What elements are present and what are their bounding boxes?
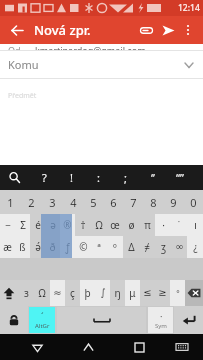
button[interactable]: ∞ bbox=[171, 236, 187, 258]
button[interactable]: 5 bbox=[83, 190, 103, 214]
staticText: ! bbox=[70, 170, 73, 185]
staticText: ə bbox=[50, 218, 56, 232]
button[interactable]: ß bbox=[15, 236, 30, 258]
button[interactable]: ə́ bbox=[30, 236, 45, 258]
staticText: Δ bbox=[128, 240, 135, 254]
button[interactable]: з bbox=[18, 280, 34, 306]
button[interactable]: ı bbox=[187, 214, 203, 236]
button[interactable]: ; bbox=[112, 165, 139, 190]
button[interactable]: Back bbox=[22, 334, 52, 360]
button[interactable]: 1 bbox=[0, 190, 21, 214]
button[interactable]: − bbox=[0, 214, 15, 236]
button[interactable]: º bbox=[107, 236, 123, 258]
button[interactable]: ª bbox=[91, 236, 107, 258]
staticText: ≠ bbox=[144, 240, 150, 254]
button[interactable]: Σ bbox=[15, 214, 30, 236]
staticText: ø bbox=[128, 218, 135, 232]
staticText: ª bbox=[97, 240, 101, 254]
staticText: 8 bbox=[150, 195, 157, 210]
button[interactable]: μ bbox=[125, 280, 140, 306]
button[interactable]: 3 bbox=[42, 190, 63, 214]
staticText: ı bbox=[194, 218, 197, 232]
staticText: 6 bbox=[110, 195, 117, 210]
button[interactable]: ˙ bbox=[171, 214, 187, 236]
staticText: 0 bbox=[190, 195, 197, 210]
button[interactable]: More options bbox=[179, 21, 197, 39]
button[interactable]: † bbox=[75, 214, 91, 236]
button[interactable]: ° bbox=[170, 280, 185, 306]
button[interactable]: ≠ bbox=[139, 236, 155, 258]
button[interactable]: ∫ bbox=[95, 280, 110, 306]
button[interactable]: Enter bbox=[174, 306, 203, 334]
button[interactable]: Space bbox=[57, 307, 146, 333]
staticText: · bbox=[160, 310, 163, 322]
button[interactable]: Shift bbox=[0, 280, 18, 306]
button[interactable]: ≥ bbox=[155, 280, 170, 306]
button[interactable]: þ bbox=[80, 280, 95, 306]
button[interactable]: ç bbox=[65, 280, 80, 306]
button[interactable]: 6 bbox=[103, 190, 123, 214]
button[interactable]: ‘’ bbox=[139, 165, 166, 190]
staticText: ə́ bbox=[35, 240, 41, 254]
staticText: Σ bbox=[20, 218, 26, 232]
button[interactable]: Search bbox=[0, 165, 30, 190]
button[interactable]: Attach bbox=[135, 19, 157, 41]
button[interactable]: ? bbox=[30, 165, 58, 190]
button[interactable]: · bbox=[148, 307, 173, 333]
button[interactable]: ¿ bbox=[187, 236, 203, 258]
button[interactable]: ə bbox=[45, 214, 60, 236]
button[interactable]: Komu bbox=[0, 51, 203, 78]
button[interactable]: ! bbox=[58, 165, 85, 190]
button[interactable]: Δ bbox=[123, 236, 139, 258]
button[interactable]: Ω bbox=[91, 214, 107, 236]
staticText: ŋ bbox=[114, 286, 121, 300]
button[interactable]: ≤ bbox=[140, 280, 155, 306]
button[interactable]: Lock bbox=[0, 306, 28, 334]
staticText: Od bbox=[8, 44, 21, 50]
staticText: † bbox=[80, 218, 86, 232]
button[interactable]: π bbox=[139, 214, 155, 236]
button[interactable]: ŋ bbox=[110, 280, 125, 306]
button[interactable]: 7 bbox=[123, 190, 143, 214]
button[interactable]: Home bbox=[73, 334, 103, 360]
staticText: 1 bbox=[7, 195, 14, 210]
button[interactable]: 8 bbox=[143, 190, 163, 214]
staticText: : bbox=[97, 170, 100, 185]
button[interactable]: æ bbox=[0, 236, 15, 258]
button[interactable]: · bbox=[155, 214, 171, 236]
button[interactable]: 2 bbox=[21, 190, 42, 214]
staticText: Předmět bbox=[8, 91, 37, 101]
button[interactable]: ® bbox=[60, 214, 75, 236]
button[interactable]: Ω bbox=[34, 280, 50, 306]
button[interactable]: ≈ bbox=[50, 280, 65, 306]
staticText: ≥ bbox=[158, 287, 167, 299]
staticText: ʒ bbox=[161, 240, 166, 254]
button[interactable]: ø bbox=[123, 214, 139, 236]
button[interactable]: ƒ bbox=[60, 236, 75, 258]
button[interactable]: Hide keyboard bbox=[169, 334, 195, 360]
staticText: œ bbox=[110, 218, 120, 232]
button[interactable]: Back bbox=[6, 19, 28, 41]
button[interactable]: Send bbox=[157, 19, 179, 41]
button[interactable]: ´ bbox=[29, 307, 55, 333]
button[interactable]: : bbox=[85, 165, 112, 190]
staticText: 9 bbox=[170, 195, 177, 210]
button[interactable]: Backspace bbox=[185, 280, 203, 306]
staticText: ˙ bbox=[178, 218, 180, 232]
button[interactable]: 0 bbox=[183, 190, 203, 214]
staticText: з bbox=[24, 286, 29, 300]
button[interactable]: œ bbox=[107, 214, 123, 236]
staticText: ∞ bbox=[175, 241, 184, 253]
button[interactable]: ʒ bbox=[155, 236, 171, 258]
button[interactable]: 4 bbox=[63, 190, 83, 214]
button[interactable]: Recents bbox=[124, 334, 154, 360]
button[interactable]: © bbox=[75, 236, 91, 258]
staticText: Sym bbox=[155, 322, 167, 330]
staticText: ≈ bbox=[53, 287, 62, 299]
button[interactable]: 9 bbox=[163, 190, 183, 214]
staticText: Ω bbox=[95, 218, 103, 232]
button[interactable]: “” bbox=[166, 165, 193, 190]
button[interactable]: é bbox=[30, 214, 45, 236]
button[interactable]: ð bbox=[45, 236, 60, 258]
